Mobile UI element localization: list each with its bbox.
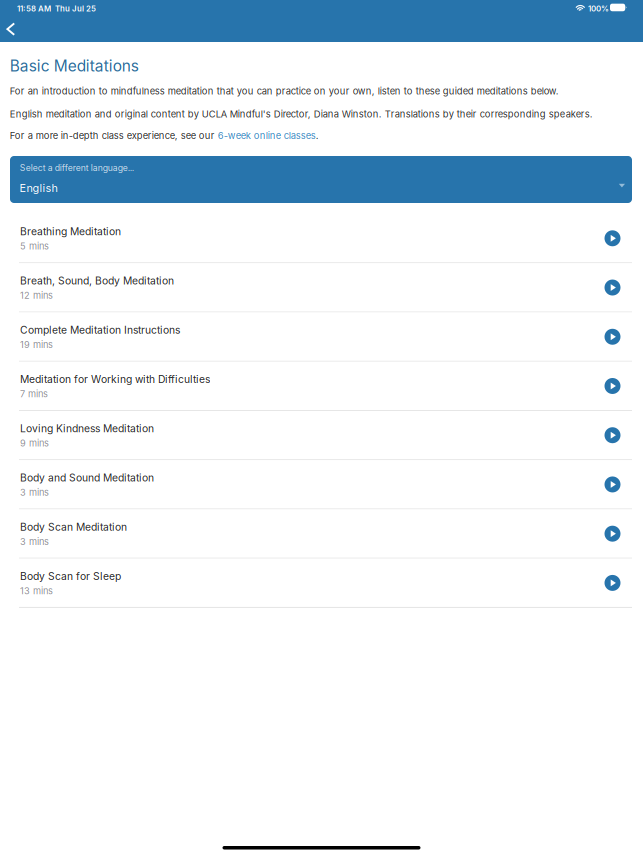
staticText: Complete Meditation Instructions [20, 324, 180, 336]
staticText: 5 mins [20, 241, 49, 252]
button[interactable]: Body Scan Meditation [0, 509, 643, 559]
button[interactable]: Complete Meditation Instructions [0, 312, 643, 362]
staticText: 11:58 AM [17, 4, 51, 13]
button[interactable]: Meditation for Working with Difficulties [0, 362, 643, 411]
button[interactable]: 6-week online classes [218, 130, 316, 141]
staticText: Breathing Meditation [20, 225, 121, 238]
staticText: Body Scan for Sleep [20, 570, 121, 582]
staticText: 12 mins [20, 290, 53, 301]
staticText: Meditation for Working with Difficulties [20, 373, 210, 385]
staticText: Basic Meditations [10, 56, 139, 75]
staticText: 13 mins [20, 585, 53, 596]
staticText: 100% [588, 4, 609, 13]
staticText: For a more in-depth class experience, se… [10, 130, 218, 141]
staticText: Body Scan Meditation [20, 521, 127, 533]
button[interactable]: Body Scan for Sleep [0, 559, 643, 608]
staticText: Body and Sound Meditation [20, 471, 154, 484]
staticText: For an introduction to mindfulness medit… [10, 85, 559, 97]
button[interactable]: Body and Sound Meditation [0, 460, 643, 509]
staticText: . [316, 130, 319, 141]
staticText: 19 mins [20, 339, 53, 350]
button[interactable]: Breathing Meditation [0, 214, 643, 263]
staticText: 7 mins [20, 388, 48, 399]
button[interactable]: Select a different language... [10, 156, 632, 203]
button[interactable]: Back [1, 17, 31, 41]
staticText: 9 mins [20, 438, 49, 449]
staticText: 3 mins [20, 536, 49, 547]
button[interactable]: Breath, Sound, Body Meditation [0, 263, 643, 312]
button[interactable]: Loving Kindness Meditation [0, 411, 643, 460]
staticText: Select a different language... [20, 162, 134, 173]
staticText: Thu Jul 25 [55, 4, 96, 13]
staticText: Loving Kindness Meditation [20, 422, 154, 435]
staticText: Breath, Sound, Body Meditation [20, 274, 174, 287]
staticText: English [20, 181, 58, 195]
staticText: 6-week online classes [218, 130, 316, 141]
staticText: 3 mins [20, 487, 49, 498]
staticText: English meditation and original content … [10, 108, 593, 120]
